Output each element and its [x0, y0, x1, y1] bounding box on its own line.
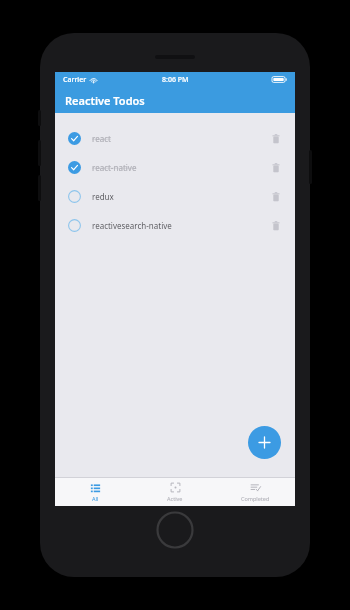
staticText: Carrier: [63, 75, 87, 85]
staticText: redux: [92, 191, 114, 202]
staticText: reactivesearch-native: [92, 220, 172, 231]
button[interactable]: Add todo: [248, 426, 281, 459]
staticText: 8:06 PM: [162, 75, 189, 85]
staticText: react-native: [92, 162, 137, 173]
button[interactable]: Completed: [55, 124, 295, 153]
staticText: All: [92, 495, 99, 502]
staticText: react: [92, 133, 111, 144]
button[interactable]: Completed: [55, 153, 295, 182]
staticText: Reactive Todos: [65, 93, 145, 108]
button[interactable]: Mark complete: [68, 190, 81, 203]
button[interactable]: Delete: [268, 189, 284, 205]
button[interactable]: Delete: [268, 160, 284, 176]
button[interactable]: Delete: [268, 131, 284, 147]
button[interactable]: Mark complete: [68, 219, 81, 232]
button[interactable]: Completed: [68, 132, 81, 145]
button[interactable]: Active: [135, 478, 215, 506]
button[interactable]: Delete: [268, 218, 284, 234]
button[interactable]: Mark complete: [55, 211, 295, 240]
staticText: Active: [167, 495, 183, 502]
button[interactable]: All: [55, 478, 135, 506]
other: Add todo: [258, 436, 271, 449]
button[interactable]: Mark complete: [55, 182, 295, 211]
button[interactable]: Completed: [215, 478, 295, 506]
staticText: Completed: [241, 495, 270, 502]
button[interactable]: Completed: [68, 161, 81, 174]
